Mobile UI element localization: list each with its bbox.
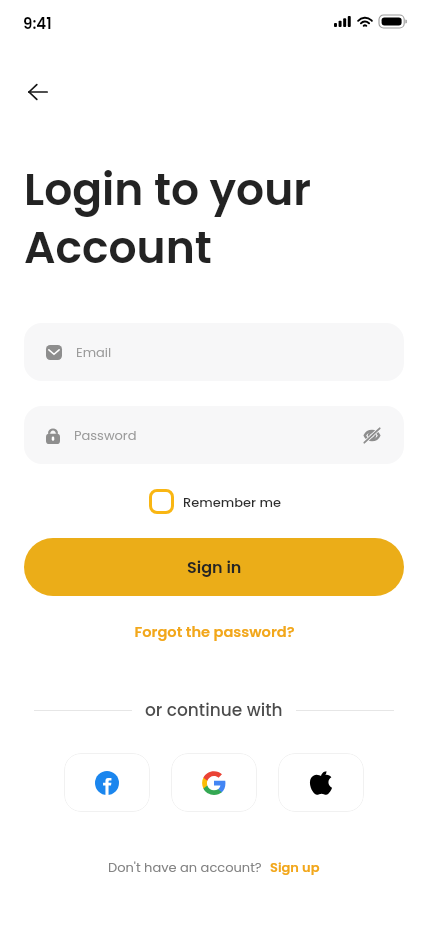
staticText: Sign in [187, 556, 242, 578]
staticText: or continue with [145, 698, 283, 722]
button[interactable]: Show password [352, 415, 392, 455]
button[interactable]: Sign in with Facebook [64, 753, 150, 812]
staticText: Sign up [270, 858, 320, 876]
staticText: Don't have an account? [108, 858, 262, 876]
button[interactable]: Sign in with Google [171, 753, 257, 812]
button[interactable]: Remember me [147, 489, 282, 514]
staticText: Remember me [183, 493, 282, 511]
button[interactable]: Back [14, 68, 62, 116]
staticText: Email [76, 343, 112, 361]
button[interactable]: Sign up [270, 858, 320, 876]
staticText: Password [74, 426, 137, 444]
staticText: 9:41 [23, 13, 52, 34]
button[interactable]: Sign in with Apple [278, 753, 364, 812]
staticText: Forgot the password? [134, 622, 295, 642]
button[interactable]: Password [24, 406, 404, 464]
staticText: Login to your Account [24, 159, 312, 279]
button[interactable]: Forgot the password? [114, 617, 314, 647]
button[interactable]: Email [24, 323, 404, 381]
button[interactable]: Sign in [24, 538, 404, 596]
